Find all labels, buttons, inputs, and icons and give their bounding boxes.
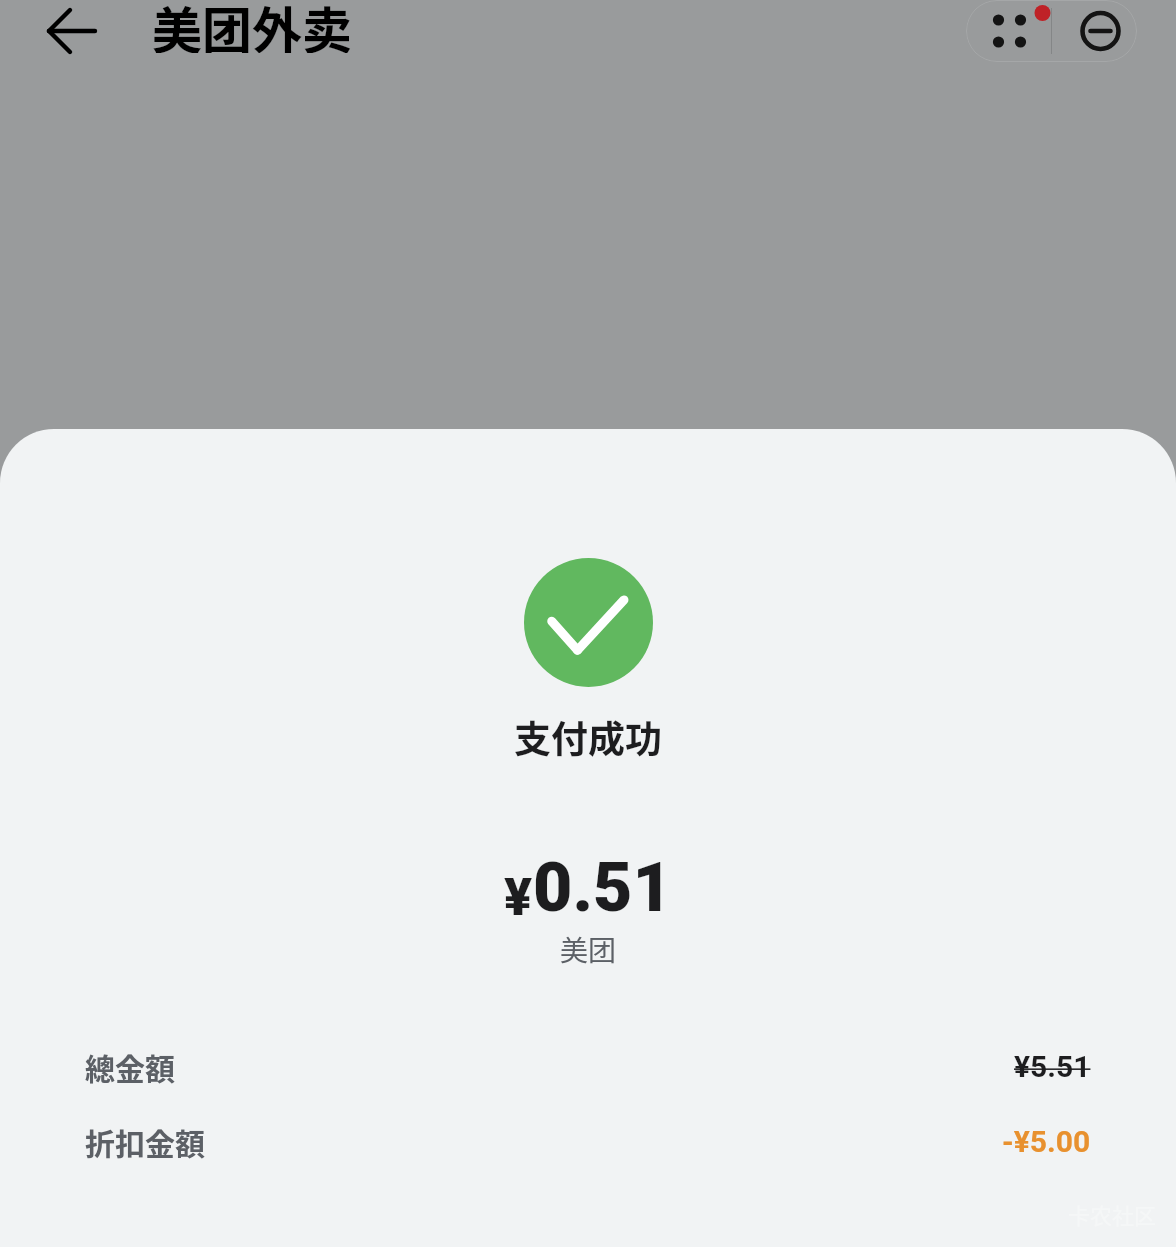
button[interactable]: Back: [23, 0, 96, 62]
button[interactable]: Close: [1052, 0, 1137, 62]
staticText: ¥5.51: [1014, 1049, 1091, 1084]
staticText: 美团外卖: [152, 0, 352, 53]
button[interactable]: 折扣金額: [0, 1119, 1176, 1163]
button[interactable]: More: [966, 0, 1051, 62]
staticText: ¥: [504, 867, 533, 928]
button[interactable]: 總金額: [0, 1044, 1176, 1088]
staticText: 0.51: [533, 848, 672, 928]
staticText: 美团: [560, 929, 617, 970]
staticText: 折扣金額: [85, 1120, 205, 1163]
staticText: 總金額: [85, 1045, 175, 1088]
staticText: -¥5.00: [1002, 1124, 1091, 1159]
staticText: 支付成功: [514, 710, 662, 764]
